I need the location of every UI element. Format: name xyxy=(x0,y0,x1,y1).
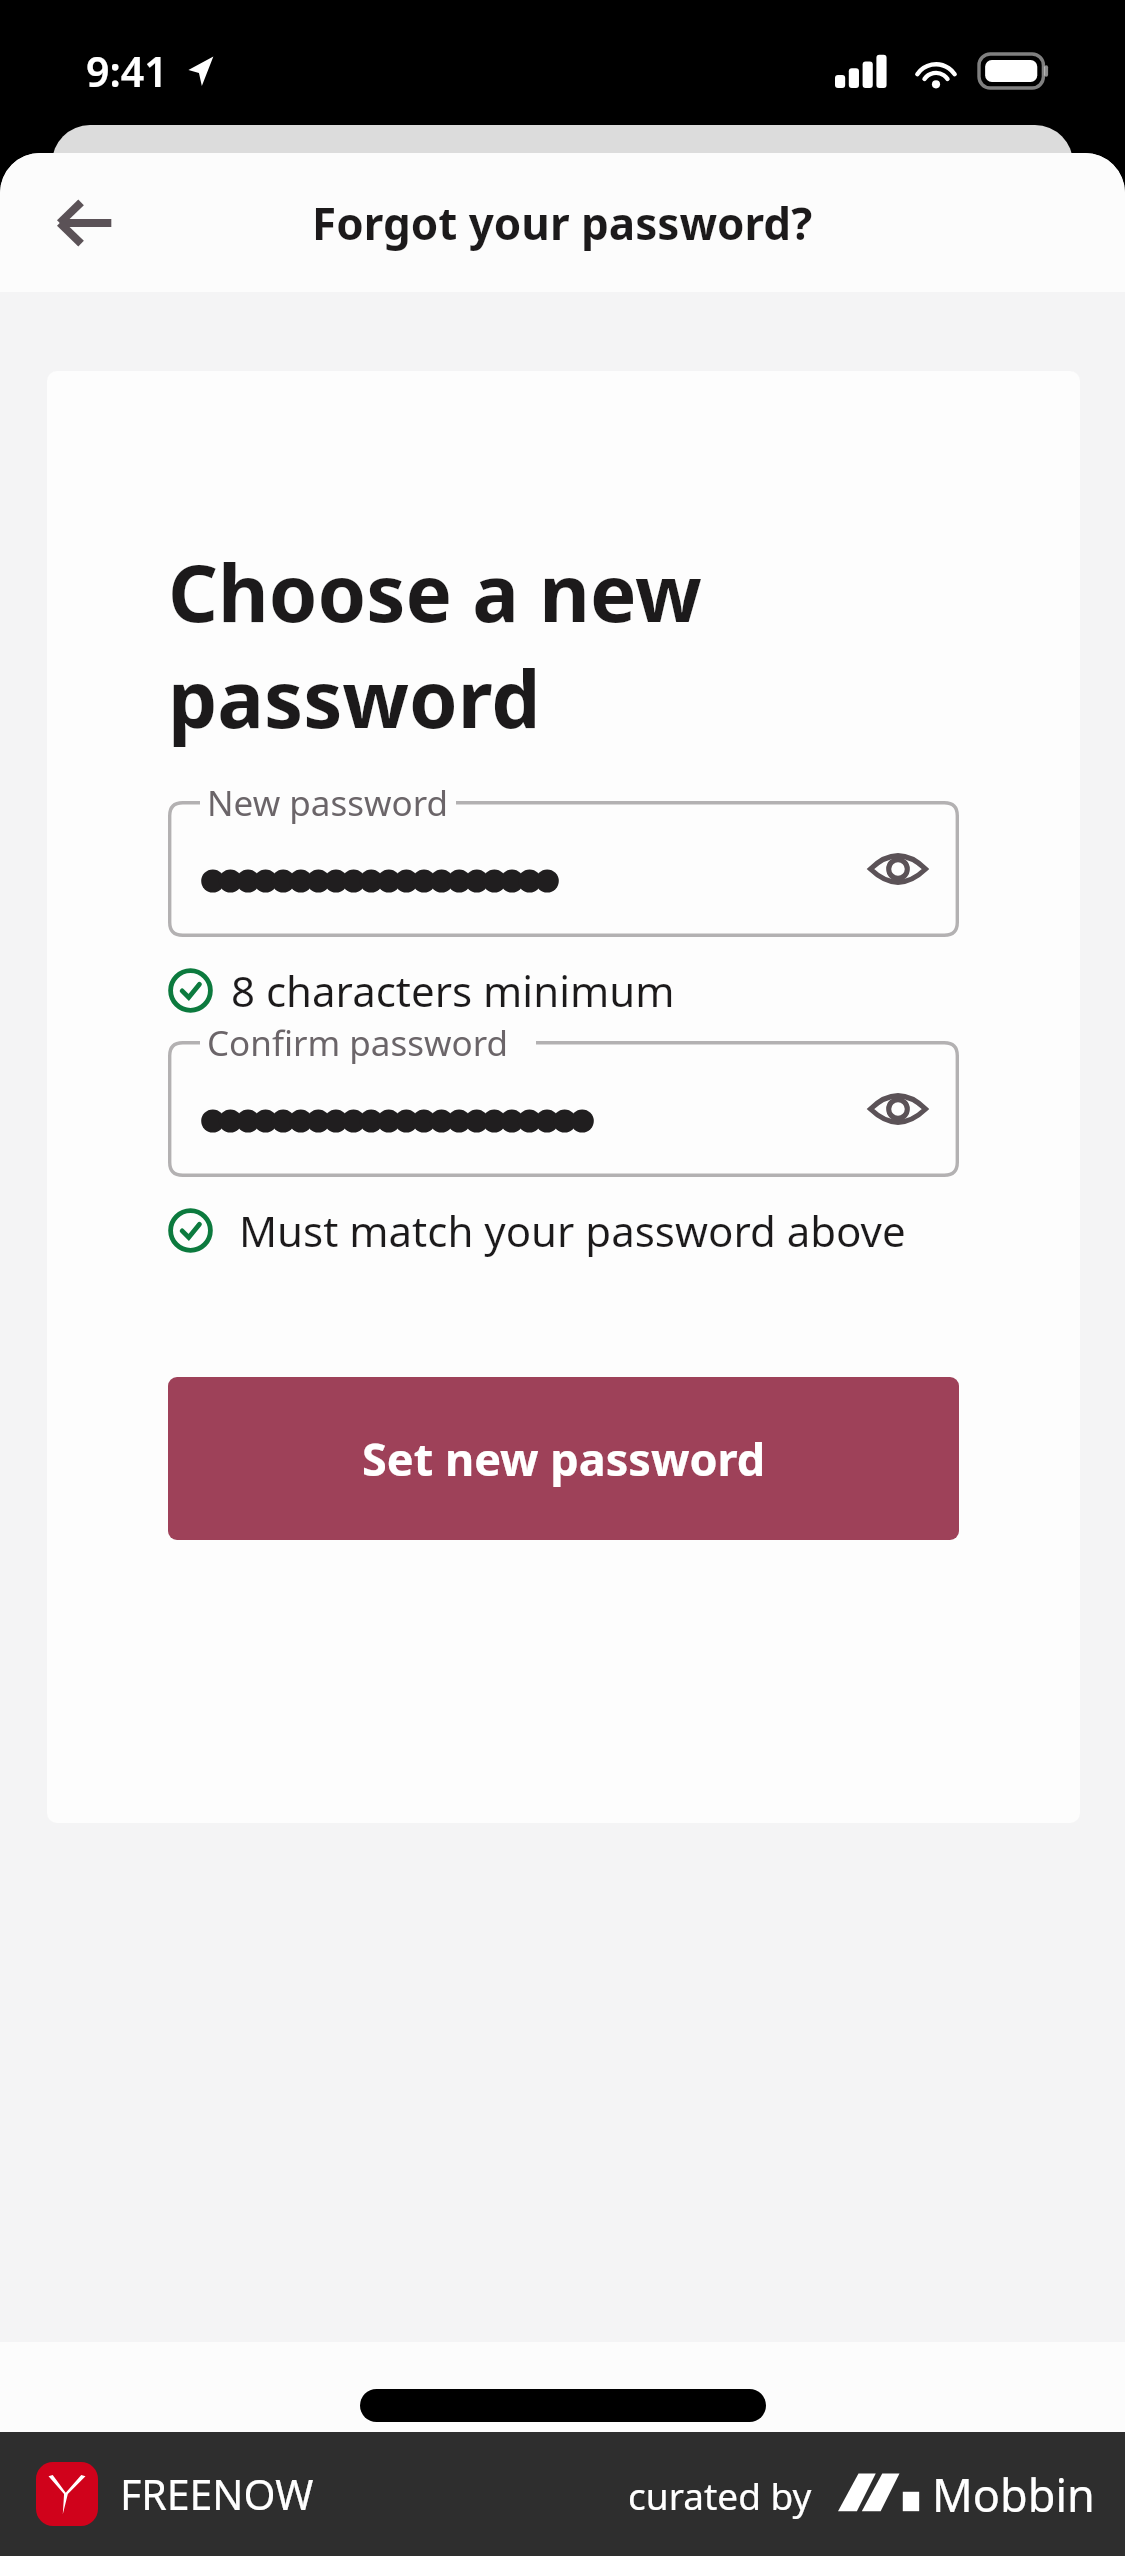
staticText: Set new password xyxy=(362,1428,766,1489)
staticText: Must match your password above xyxy=(239,1202,906,1259)
staticText: FREENOW xyxy=(120,2466,314,2522)
button[interactable]: Confirm password xyxy=(168,1041,959,1177)
staticText: Mobbin xyxy=(932,2464,1095,2525)
staticText: 8 characters minimum xyxy=(231,962,675,1019)
staticText: password xyxy=(168,645,541,751)
staticText: 9:41 xyxy=(86,43,168,99)
staticText: Forgot your password? xyxy=(312,193,813,253)
button[interactable]: New password xyxy=(168,801,959,937)
button[interactable]: Show password xyxy=(849,820,947,918)
button[interactable]: Must match your password above xyxy=(168,1199,959,1261)
button[interactable]: Show password xyxy=(849,1060,947,1158)
staticText: New password xyxy=(207,779,448,827)
staticText: Choose a new xyxy=(168,539,702,645)
button[interactable]: Back xyxy=(36,174,134,272)
button[interactable]: 8 characters minimum xyxy=(168,959,959,1021)
staticText: curated by xyxy=(628,2470,812,2520)
staticText: Confirm password xyxy=(207,1019,508,1067)
button[interactable]: Set new password xyxy=(168,1377,959,1540)
